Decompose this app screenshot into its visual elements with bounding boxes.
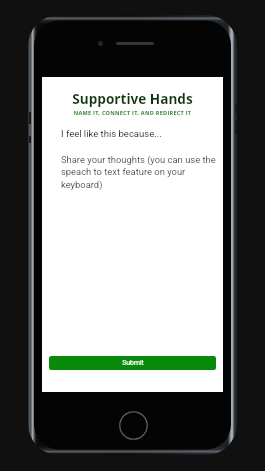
staticText: I feel like this because...: [61, 128, 162, 139]
staticText: Supportive Hands: [42, 89, 223, 108]
staticText: Submit: [122, 359, 144, 367]
staticText: Share your thoughts (you can use the spe…: [61, 154, 221, 190]
button[interactable]: Submit: [49, 356, 216, 370]
staticText: NAME IT, CONNECT IT, AND REDIRECT IT: [42, 109, 223, 116]
other: Home: [119, 411, 148, 440]
